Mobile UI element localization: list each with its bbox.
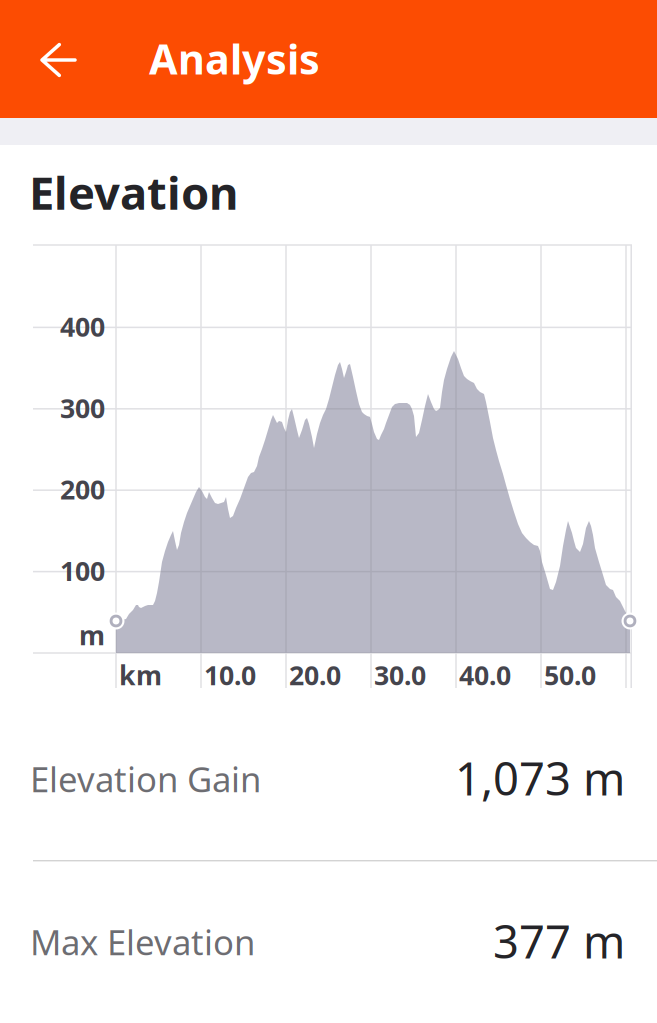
staticText: Elevation Gain (30, 756, 261, 802)
staticText: 100 (60, 553, 105, 588)
staticText: km (119, 657, 162, 693)
staticText: 300 (60, 390, 105, 425)
staticText: 50.0 (544, 657, 596, 693)
staticText: 40.0 (459, 657, 511, 693)
staticText: Elevation (29, 162, 238, 222)
staticText: 30.0 (374, 657, 426, 693)
staticText: 10.0 (204, 657, 256, 693)
staticText: 200 (60, 471, 105, 507)
staticText: 1,073 m (455, 748, 625, 808)
staticText: 400 (60, 309, 105, 344)
staticText: Max Elevation (30, 919, 255, 965)
staticText: Analysis (149, 31, 320, 86)
staticText: m (79, 617, 105, 653)
button[interactable]: Back (0, 0, 110, 118)
staticText: 377 m (493, 911, 625, 971)
staticText: 20.0 (289, 657, 341, 693)
